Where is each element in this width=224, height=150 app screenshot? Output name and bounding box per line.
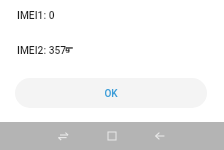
button[interactable]: Home — [99, 122, 125, 150]
staticText: OK — [104, 88, 118, 100]
staticText: IMEI1: 0 — [17, 9, 55, 21]
staticText: IMEI2: 357 — [17, 44, 67, 56]
button[interactable]: Back — [147, 122, 173, 150]
button[interactable]: Recent apps — [51, 122, 77, 150]
button[interactable]: OK — [15, 78, 207, 108]
